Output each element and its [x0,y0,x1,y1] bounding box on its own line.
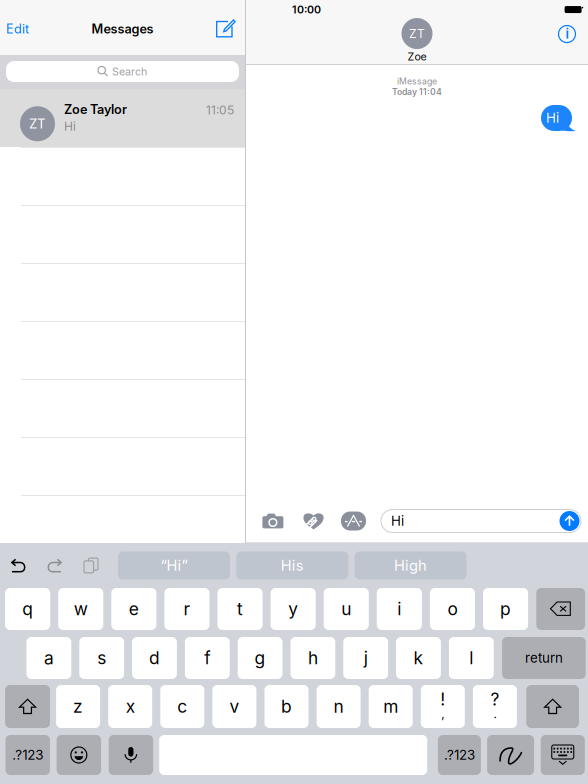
button[interactable]: o [430,588,475,630]
button[interactable]: Dictate [109,735,153,775]
button[interactable]: .?123 [5,735,50,775]
staticText: . [493,707,496,721]
staticText: q [22,598,33,619]
button[interactable]: v [212,685,256,728]
button[interactable]: Emoji [57,735,101,775]
button[interactable]: Shift [526,685,579,728]
staticText: g [255,647,266,668]
button[interactable]: Search [6,61,239,82]
staticText: .?123 [12,747,43,763]
staticText: i [565,26,568,42]
staticText: ZT [29,116,46,132]
button[interactable]: Hi [381,509,581,532]
staticText: ZT [409,26,425,41]
button[interactable]: r [164,588,209,630]
staticText: n [334,696,344,717]
button[interactable]: ZT [0,89,245,147]
button[interactable]: Shift [5,685,50,728]
button[interactable]: c [160,685,204,728]
staticText: return [525,650,563,666]
staticText: b [281,696,292,717]
staticText: High [394,557,427,574]
button[interactable]: k [396,637,441,679]
button[interactable]: ? [473,685,517,728]
button[interactable]: n [317,685,361,728]
staticText: Hi [546,110,559,126]
button[interactable]: Digital Touch [303,512,324,530]
staticText: ? [490,689,499,710]
button[interactable]: .?123 [438,735,481,775]
button[interactable]: q [5,588,50,630]
staticText: m [383,696,398,717]
staticText: h [308,647,318,668]
staticText: Hi [391,513,404,529]
staticText: k [413,647,423,668]
button[interactable]: His [236,551,348,579]
button[interactable]: i [377,588,422,630]
staticText: p [500,598,511,619]
staticText: “Hi” [160,557,187,574]
staticText: Messages [91,21,153,37]
button[interactable]: App Store [341,511,366,530]
staticText: w [74,598,88,619]
staticText: .?123 [444,747,475,763]
button[interactable]: x [108,685,152,728]
button[interactable]: Undo [11,558,27,572]
button[interactable]: b [264,685,308,728]
button[interactable]: s [79,637,124,679]
button[interactable]: y [271,588,316,630]
staticText: f [204,647,210,668]
staticText: Search [112,65,147,78]
staticText: i [397,598,401,619]
button[interactable]: f [185,637,230,679]
staticText: 11:05 [206,103,234,117]
staticText: iMessage [397,76,437,86]
staticText: t [237,598,243,619]
staticText: c [177,696,187,717]
button[interactable]: g [238,637,282,679]
button[interactable]: Scribble [487,735,534,775]
staticText: , [441,707,444,721]
staticText: ! [440,689,445,710]
button[interactable]: t [217,588,263,630]
button[interactable]: a [26,637,71,679]
button[interactable]: Paste [83,557,99,573]
button[interactable]: ! [421,685,465,728]
button[interactable]: h [290,637,335,679]
staticText: Zoe [407,50,426,63]
button[interactable]: Edit [0,14,46,44]
staticText: z [73,696,83,717]
staticText: Edit [6,21,29,37]
staticText: Hi [64,119,76,134]
button[interactable]: m [369,685,413,728]
button[interactable]: Camera [262,513,284,529]
button[interactable]: Hide Keyboard [541,735,585,775]
button[interactable]: u [324,588,369,630]
button[interactable]: p [483,588,528,630]
staticText: u [341,598,351,619]
button[interactable]: j [343,637,388,679]
button[interactable]: e [111,588,156,630]
staticText: 10:00 [292,3,321,16]
staticText: r [183,598,190,619]
button[interactable]: l [449,637,494,679]
button[interactable]: “Hi” [118,551,230,579]
button[interactable]: Details [558,25,576,43]
staticText: d [149,647,160,668]
button[interactable]: Compose [195,14,245,44]
button[interactable]: Redo [46,558,62,572]
staticText: a [44,647,54,668]
button[interactable]: High [355,551,467,579]
button[interactable]: Delete [536,588,585,630]
button[interactable]: d [132,637,177,679]
staticText: j [364,647,368,668]
button[interactable]: z [56,685,100,728]
staticText: His [281,557,304,574]
staticText: Zoe Taylor [64,102,127,117]
button[interactable]: return [502,637,586,679]
staticText: v [229,696,239,717]
staticText: x [126,696,135,717]
button[interactable]: w [58,588,103,630]
staticText: s [97,647,106,668]
